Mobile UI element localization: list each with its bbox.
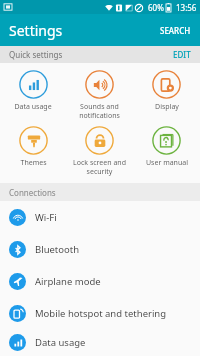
staticText: Sounds and notifications bbox=[79, 102, 120, 120]
staticText: 60% bbox=[148, 2, 164, 13]
staticText: Connections bbox=[9, 187, 56, 198]
staticText: Data usage bbox=[14, 102, 52, 112]
button[interactable]: EDIT bbox=[164, 46, 200, 63]
button[interactable]: Mobile hotspot and tethering bbox=[0, 297, 200, 329]
staticText: Data usage bbox=[35, 336, 86, 349]
button[interactable]: Wi-Fi bbox=[0, 201, 200, 233]
staticText: EDIT bbox=[173, 49, 191, 60]
button[interactable]: Bluetooth bbox=[0, 233, 200, 265]
button[interactable]: Lock screen and security bbox=[66, 126, 133, 176]
staticText: Quick settings bbox=[9, 49, 63, 60]
button[interactable]: Display bbox=[133, 70, 200, 112]
staticText: Settings bbox=[9, 21, 63, 40]
staticText: Themes bbox=[20, 158, 47, 168]
staticText: Mobile hotspot and tethering bbox=[35, 307, 167, 320]
staticText: SEARCH bbox=[160, 25, 191, 36]
button[interactable]: Sounds and notifications bbox=[66, 70, 133, 120]
button[interactable]: Data usage bbox=[0, 70, 66, 112]
button[interactable]: User manual bbox=[133, 126, 200, 168]
staticText: Airplane mode bbox=[35, 275, 101, 288]
staticText: Wi-Fi bbox=[35, 211, 57, 224]
staticText: Lock screen and security bbox=[73, 158, 126, 176]
button[interactable]: Data usage bbox=[0, 329, 200, 356]
staticText: User manual bbox=[146, 158, 188, 168]
button[interactable]: Airplane mode bbox=[0, 265, 200, 297]
staticText: 13:56 bbox=[176, 2, 197, 13]
button[interactable]: SEARCH bbox=[151, 14, 200, 46]
staticText: Bluetooth bbox=[35, 243, 80, 256]
staticText: Display bbox=[155, 102, 179, 112]
button[interactable]: Themes bbox=[0, 126, 66, 168]
